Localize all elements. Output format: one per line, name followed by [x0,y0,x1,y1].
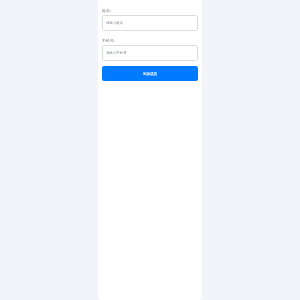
button[interactable]: 请输入手机号 [102,45,198,61]
staticText: 手机号: [102,38,115,43]
staticText: 添加成员 [143,72,157,76]
button[interactable]: 请输入姓名 [102,15,198,31]
staticText: 姓名: [102,8,111,13]
button[interactable]: 添加成员 [102,66,198,81]
staticText: 请输入姓名 [106,21,124,25]
staticText: 请输入手机号 [106,51,127,55]
